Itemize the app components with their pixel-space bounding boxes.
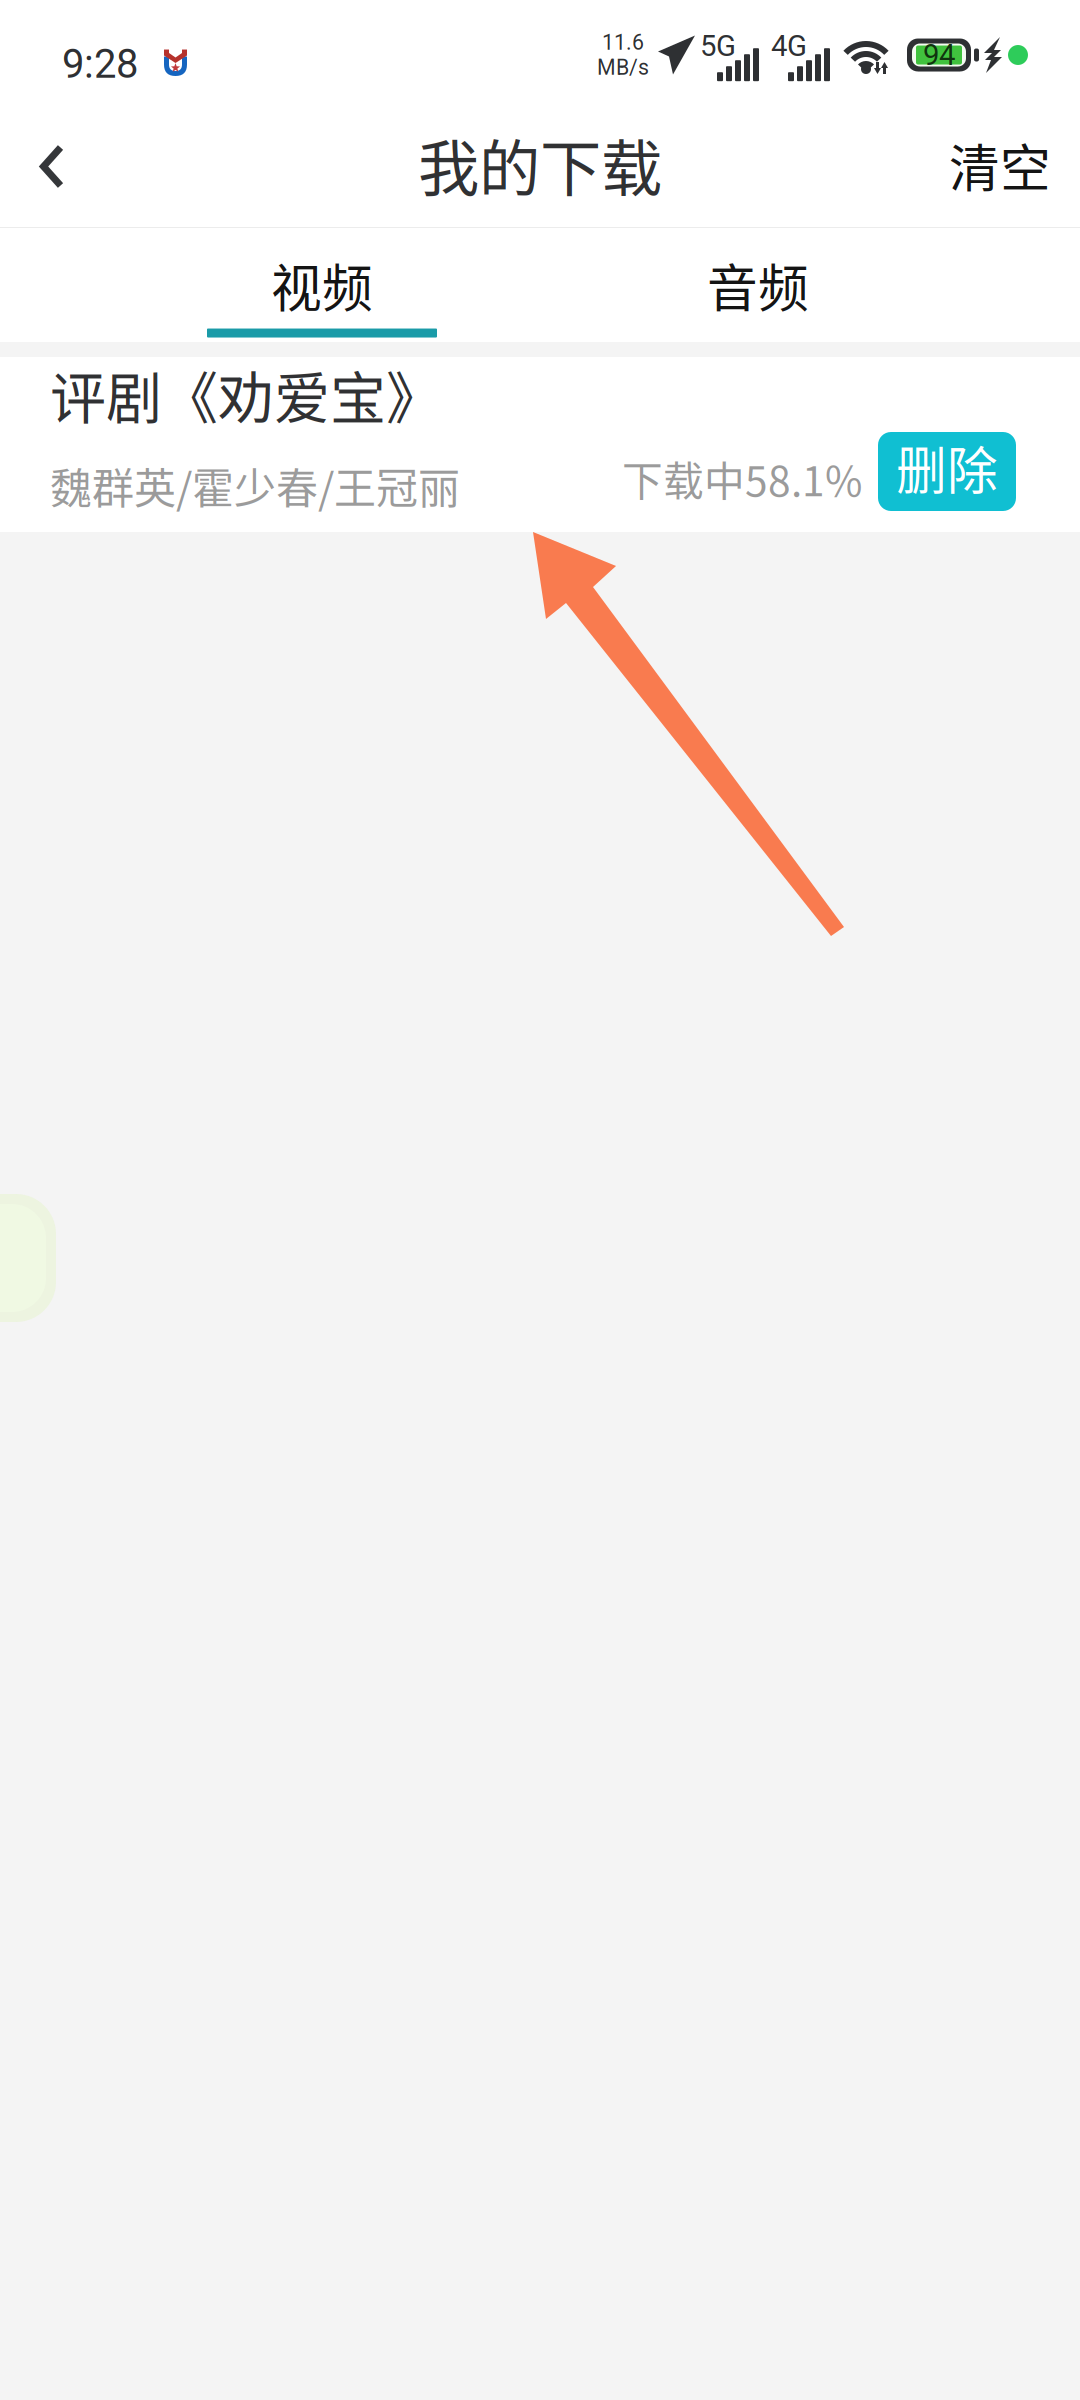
- staticText: 音频: [707, 248, 809, 322]
- staticText: MB/s: [597, 55, 649, 80]
- staticText: 11.6: [602, 30, 644, 55]
- staticText: 评剧《劝爱宝》: [50, 353, 442, 435]
- staticText: 9:28: [62, 41, 138, 87]
- staticText: 4G: [771, 29, 807, 63]
- button[interactable]: 音频: [540, 228, 976, 342]
- button[interactable]: 清空: [935, 110, 1080, 227]
- staticText: 删除: [896, 431, 998, 504]
- staticText: 我的下载: [418, 120, 662, 209]
- staticText: 魏群英/霍少春/王冠丽: [50, 455, 460, 516]
- staticText: 94: [923, 38, 955, 72]
- staticText: 下载中58.1%: [622, 449, 862, 508]
- button[interactable]: Back: [0, 110, 104, 227]
- staticText: 视频: [271, 248, 373, 322]
- staticText: 5G: [700, 29, 736, 63]
- button[interactable]: 评剧《劝爱宝》: [0, 357, 1080, 532]
- button[interactable]: 删除: [878, 432, 1016, 511]
- button[interactable]: 视频: [104, 228, 540, 342]
- staticText: 清空: [949, 128, 1051, 202]
